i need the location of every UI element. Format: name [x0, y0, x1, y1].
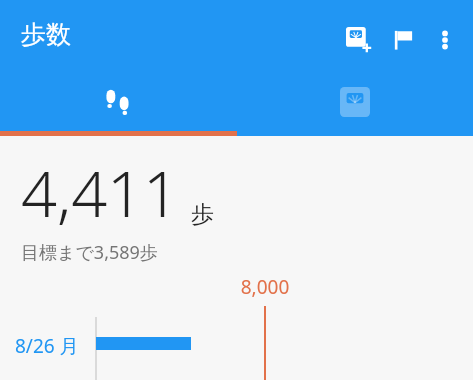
button[interactable]: 体重タブ: [236, 72, 473, 132]
staticText: 8/26 月: [15, 333, 79, 359]
staticText: 目標まで3,589歩: [21, 240, 158, 265]
button[interactable]: 目標: [381, 18, 425, 62]
staticText: 歩: [191, 200, 214, 229]
staticText: 8,000: [237, 274, 293, 300]
staticText: 歩数: [21, 19, 71, 50]
button[interactable]: その他のオプション: [425, 20, 465, 60]
button[interactable]: 歩数タブ: [0, 72, 236, 132]
button[interactable]: 体重を追加: [337, 18, 381, 62]
staticText: 4,411: [21, 150, 180, 236]
